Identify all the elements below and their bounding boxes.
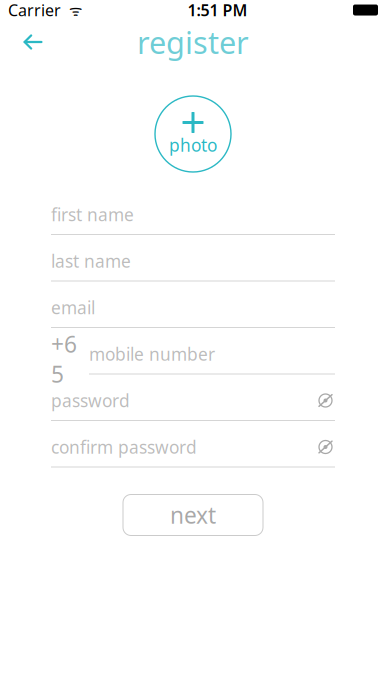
staticText: confirm password [51,435,197,458]
staticText: password [51,389,130,412]
staticText: photo [169,133,217,156]
button[interactable]: Show password [316,391,335,410]
staticText: ᯤ [61,0,82,20]
staticText: 1:51 PM [187,0,247,21]
staticText: Carrier [8,0,61,21]
staticText: last name [51,249,131,272]
button[interactable]: Back [11,20,55,64]
staticText: first name [51,203,134,226]
staticText: next [170,500,216,530]
staticText: +65 [51,329,77,389]
button[interactable]: next [123,494,263,535]
staticText: register [137,22,249,62]
button[interactable]: Add photo [153,94,233,174]
button[interactable]: Show password [316,437,335,456]
staticText: email [51,296,95,319]
staticText: mobile number [89,342,215,365]
